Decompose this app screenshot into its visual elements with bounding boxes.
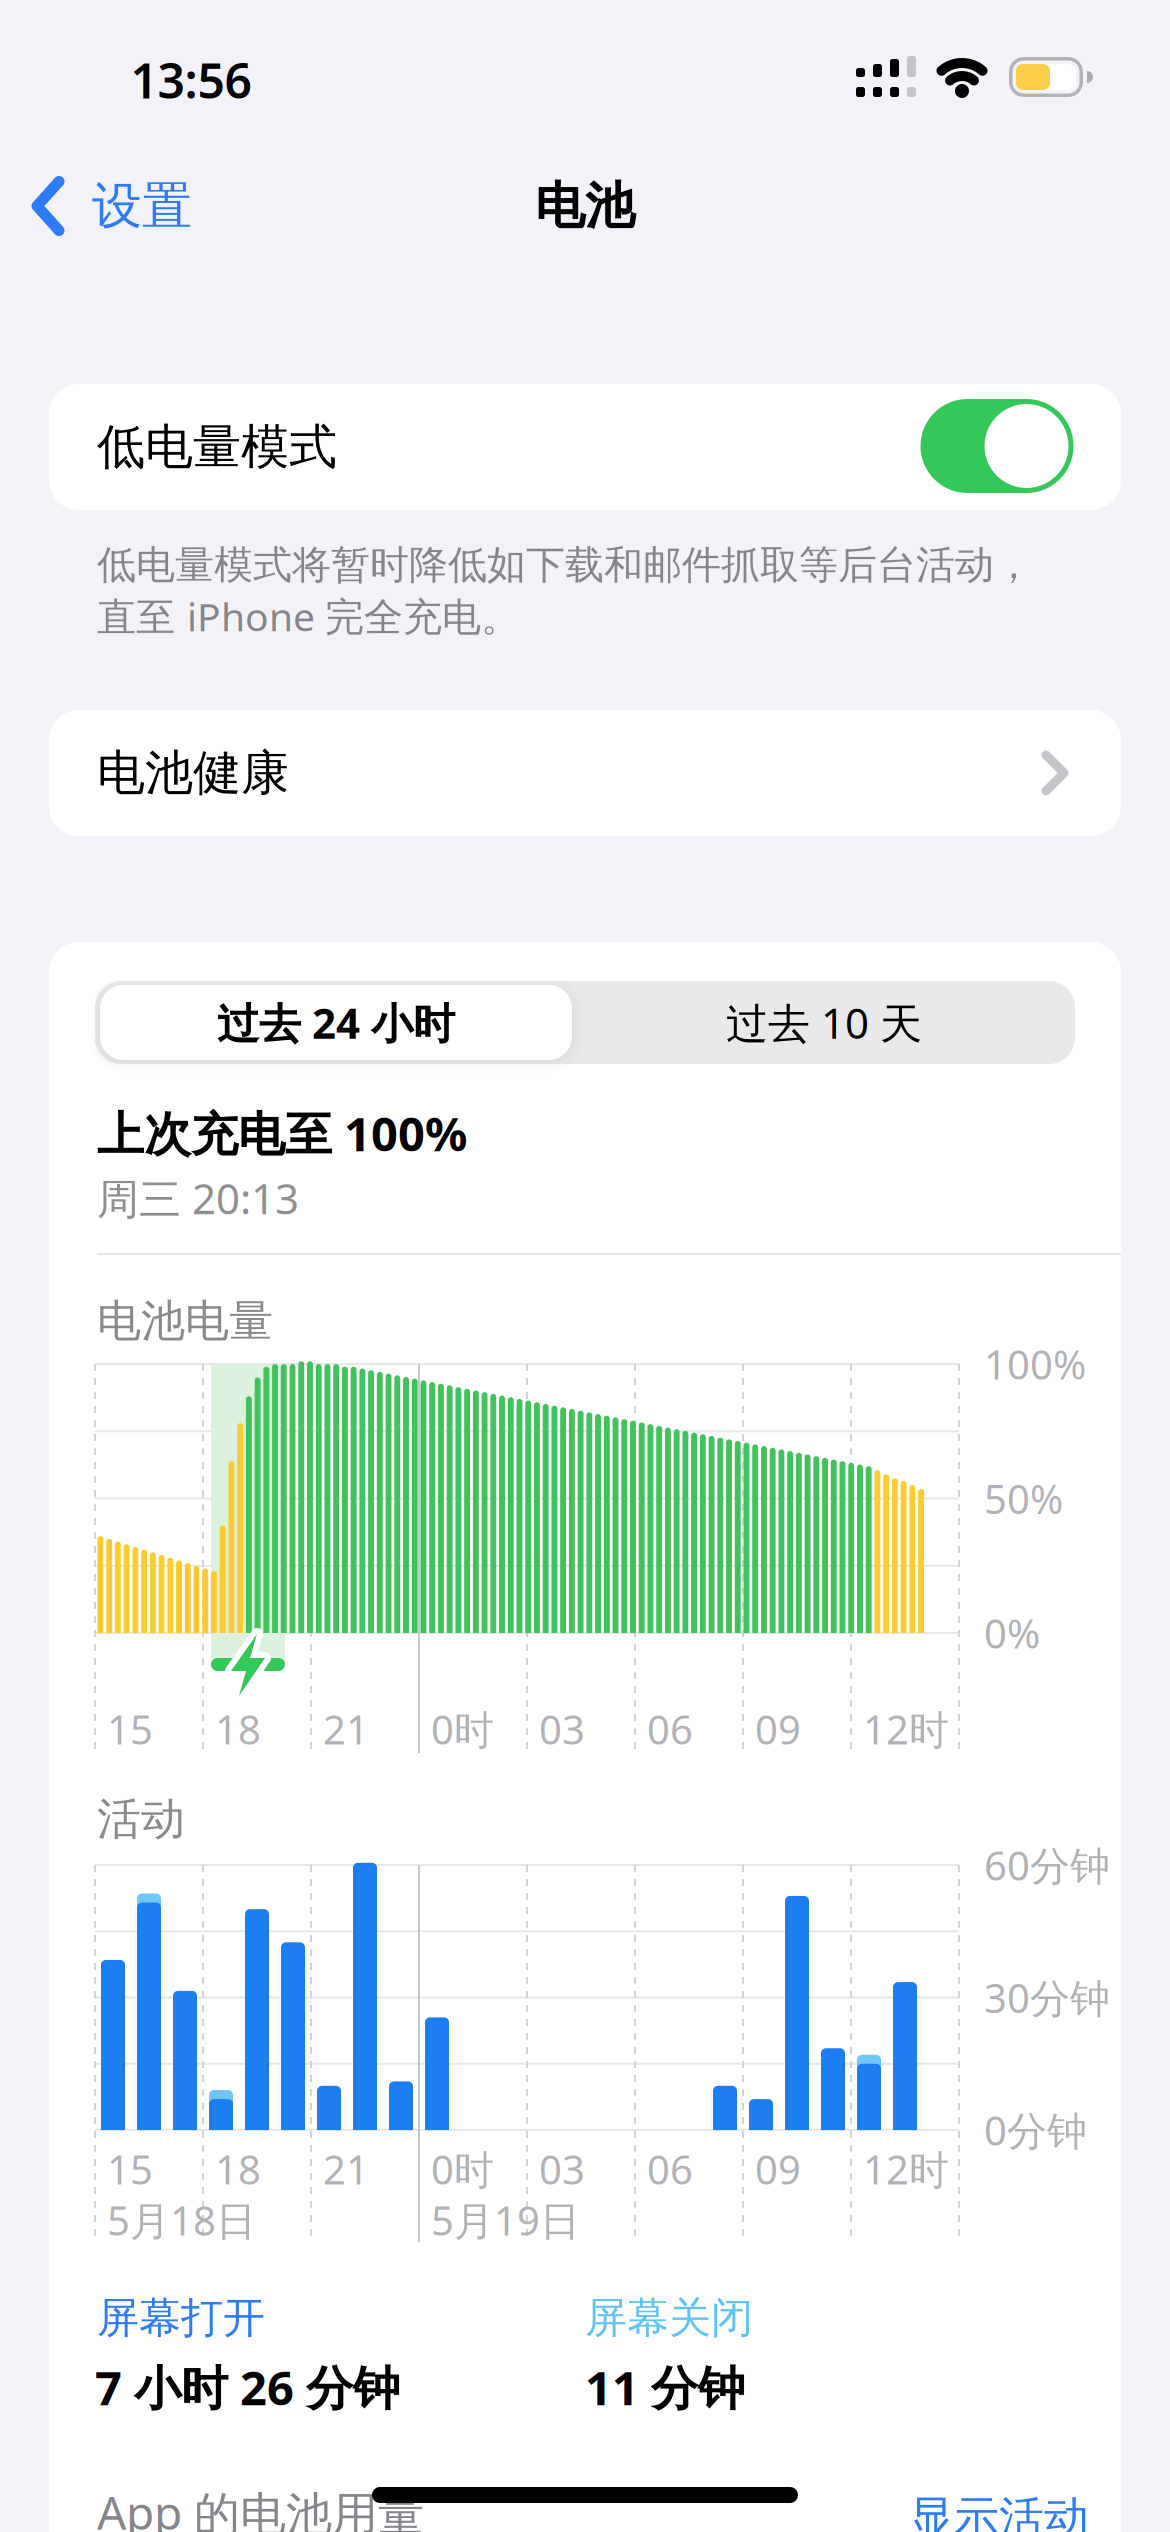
staticText: 上次充电至 100% — [97, 1101, 467, 1165]
staticText: 屏幕打开 — [97, 2291, 265, 2344]
button[interactable]: 显示活动 — [909, 2490, 1089, 2532]
staticText: 15 — [107, 1702, 153, 1756]
button[interactable]: 过去 24 小时 — [100, 985, 572, 1060]
staticText: 低电量模式 — [97, 417, 337, 477]
staticText: 50% — [984, 1471, 1063, 1526]
button[interactable] — [920, 399, 1073, 493]
staticText: 过去 24 小时 — [217, 994, 455, 1051]
staticText: 18 — [215, 2142, 261, 2196]
button[interactable]: 设置 — [32, 174, 192, 237]
staticText: 周三 20:13 — [97, 1169, 299, 1227]
staticText: 15 — [107, 2142, 153, 2196]
staticText: 电池电量 — [97, 1293, 273, 1349]
staticText: 60分钟 — [984, 1838, 1110, 1892]
staticText: 屏幕关闭 — [585, 2291, 753, 2344]
staticText: 0分钟 — [984, 2103, 1087, 2157]
staticText: 设置 — [92, 174, 192, 237]
staticText: 0时 — [431, 1702, 494, 1756]
staticText: 09 — [755, 2142, 801, 2196]
staticText: 12时 — [863, 1702, 949, 1756]
staticText: 过去 10 天 — [726, 994, 922, 1051]
staticText: 11 分钟 — [585, 2355, 745, 2419]
staticText: 03 — [539, 1702, 585, 1756]
staticText: 21 — [323, 1702, 369, 1756]
staticText: 21 — [323, 2142, 369, 2196]
staticText: 电池健康 — [97, 743, 289, 803]
button[interactable]: 电池健康 — [49, 710, 1121, 836]
staticText: 30分钟 — [984, 1970, 1110, 2025]
staticText: 显示活动 — [909, 2490, 1089, 2532]
staticText: 电池 — [535, 174, 635, 237]
staticText: 100% — [984, 1337, 1086, 1391]
staticText: App 的电池用量 — [97, 2481, 424, 2532]
staticText: 13:56 — [130, 47, 251, 113]
staticText: 0% — [984, 1606, 1040, 1660]
staticText: 06 — [647, 2142, 693, 2196]
staticText: 03 — [539, 2142, 585, 2196]
staticText: 7 小时 26 分钟 — [95, 2355, 400, 2419]
staticText: 低电量模式将暂时降低如下载和邮件抓取等后台活动， — [97, 540, 1033, 589]
staticText: 直至 iPhone 完全充电。 — [97, 589, 520, 642]
staticText: 5月18日 — [107, 2193, 256, 2247]
button[interactable]: 过去 10 天 — [614, 985, 1034, 1060]
staticText: 18 — [215, 1702, 261, 1756]
staticText: 0时 — [431, 2142, 494, 2196]
staticText: 06 — [647, 1702, 693, 1756]
staticText: 活动 — [97, 1791, 185, 1847]
staticText: 12时 — [863, 2142, 949, 2196]
staticText: 09 — [755, 1702, 801, 1756]
staticText: 5月19日 — [431, 2193, 580, 2247]
